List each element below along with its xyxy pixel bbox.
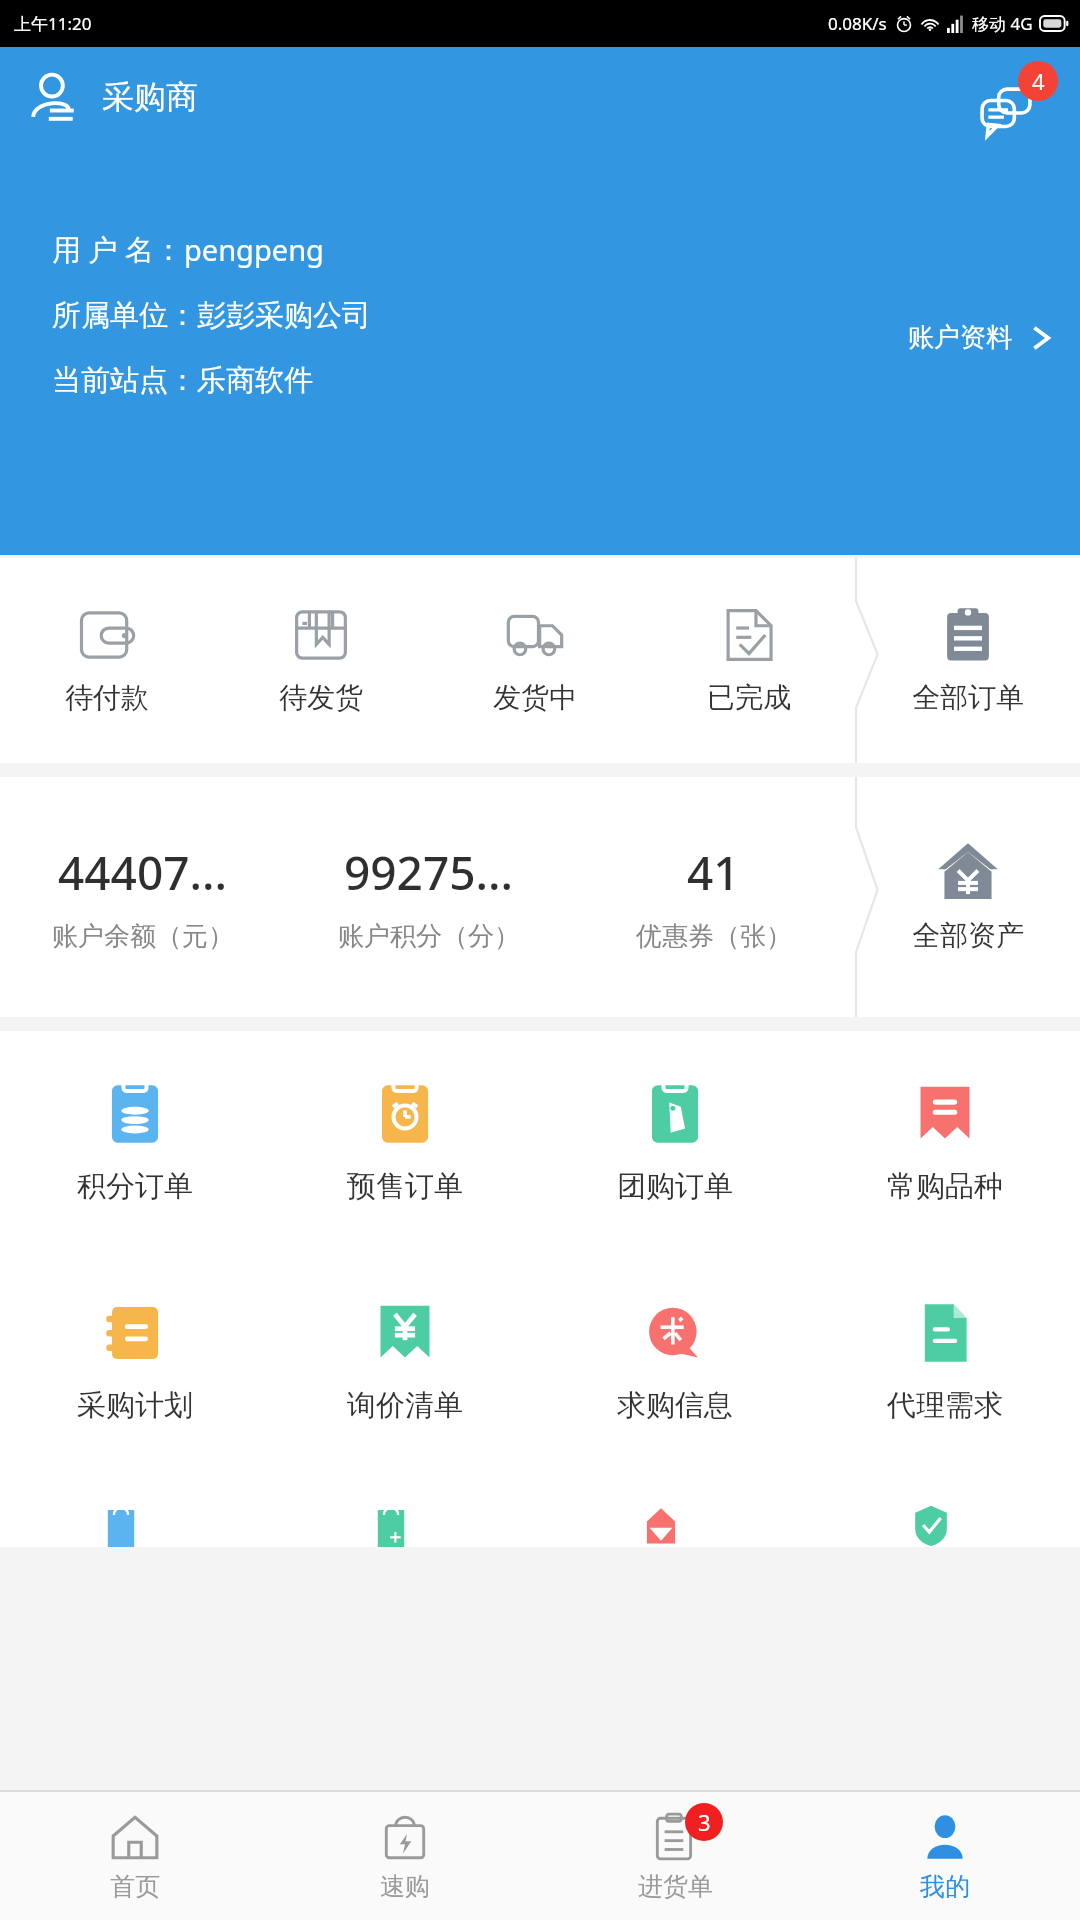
button[interactable]: 积分订单 [0,1031,270,1251]
staticText: 0.08K/s [828,12,887,35]
staticText: 3 [698,1807,711,1837]
staticText: 全部订单 [912,680,1024,715]
button[interactable] [0,1469,270,1547]
staticText: 采购商 [102,77,198,117]
staticText: 进货单 [638,1871,713,1902]
button[interactable]: 采购计划 [0,1251,270,1469]
staticText: 乐商软件 [197,362,313,399]
staticText: 用 户 名： [52,229,184,269]
staticText: 发货中 [493,680,577,715]
staticText: 速购 [380,1871,430,1902]
staticText: 优惠券（张） [636,920,792,953]
staticText: 待发货 [279,680,363,715]
staticText: 99275... [344,841,514,904]
button[interactable]: 账户资料 [902,315,1062,360]
button[interactable]: 99275... [286,777,571,1017]
button[interactable]: 3 [540,1792,810,1920]
button[interactable] [810,1469,1080,1547]
button[interactable]: 速购 [270,1792,540,1920]
staticText: 求购信息 [617,1387,733,1424]
button[interactable]: 待发货 [214,558,428,763]
staticText: 询价清单 [347,1387,463,1424]
button[interactable]: Messages [980,61,1058,139]
button[interactable]: 已完成 [642,558,856,763]
button[interactable]: 待付款 [0,558,214,763]
button[interactable]: 询价清单 [270,1251,540,1469]
staticText: 移动 4G [972,12,1033,35]
button[interactable]: 常购品种 [810,1031,1080,1251]
button[interactable]: 团购订单 [540,1031,810,1251]
button[interactable]: 首页 [0,1792,270,1920]
staticText: 常购品种 [887,1168,1003,1205]
staticText: 4 [1032,66,1045,96]
staticText: 账户积分（分） [338,920,520,953]
staticText: 我的 [920,1871,970,1902]
button[interactable] [540,1469,810,1547]
button[interactable]: 代理需求 [810,1251,1080,1469]
staticText: 首页 [110,1871,160,1902]
staticText: 41 [687,841,740,904]
button[interactable]: 发货中 [428,558,642,763]
button[interactable]: 41 [571,777,856,1017]
staticText: 44407... [58,841,228,904]
staticText: 采购计划 [77,1387,193,1424]
button[interactable]: 44407... [0,777,286,1017]
button[interactable]: 求购信息 [540,1251,810,1469]
staticText: pengpeng [184,230,324,269]
button[interactable]: 全部资产 [856,777,1080,1017]
staticText: 所属单位： [52,297,197,334]
staticText: 彭彭采购公司 [197,297,371,334]
button[interactable] [270,1469,540,1547]
staticText: 待付款 [65,680,149,715]
button[interactable]: 我的 [810,1792,1080,1920]
staticText: 预售订单 [347,1168,463,1205]
staticText: 上午11:20 [14,12,92,35]
staticText: 已完成 [707,680,791,715]
button[interactable]: 全部订单 [856,558,1080,763]
staticText: 账户余额（元） [52,920,234,953]
staticText: 全部资产 [912,918,1024,953]
button[interactable]: 预售订单 [270,1031,540,1251]
staticText: 账户资料 [908,321,1012,354]
staticText: 积分订单 [77,1168,193,1205]
staticText: 代理需求 [887,1387,1003,1424]
staticText: 当前站点： [52,362,197,399]
staticText: 团购订单 [617,1168,733,1205]
